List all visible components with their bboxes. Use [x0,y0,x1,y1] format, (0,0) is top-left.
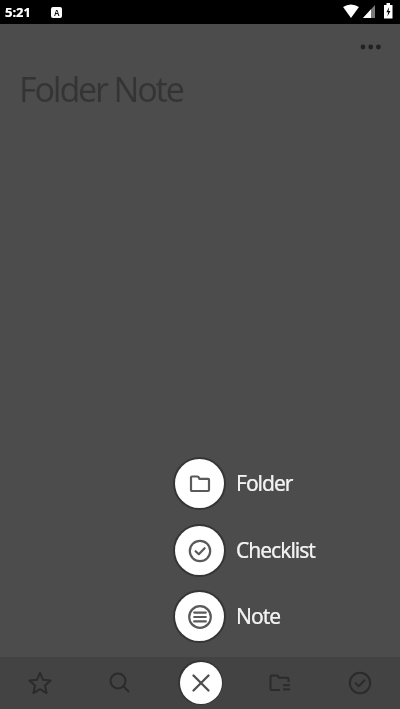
staticText: A [54,7,60,18]
button[interactable]: Note [173,590,281,643]
staticText: Folder [236,469,293,498]
staticText: 5:21 [5,3,31,21]
button[interactable] [320,657,400,709]
staticText: Note [236,602,281,631]
button[interactable]: Checklist [173,524,315,577]
button[interactable] [178,660,223,705]
button[interactable] [240,657,320,709]
staticText: Checklist [236,536,315,565]
button[interactable] [348,24,396,72]
button[interactable]: Folder [173,457,293,510]
button[interactable] [0,657,80,709]
button[interactable] [80,657,160,709]
staticText: Folder Note [19,66,183,112]
